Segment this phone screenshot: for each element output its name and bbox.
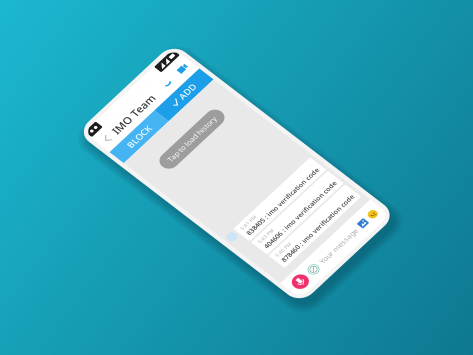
staticText: 838405 : imo verification code — [168, 258, 323, 272]
staticText: 878460 : imo verification code — [168, 331, 323, 345]
staticText: 404606 : imo verification code — [168, 294, 323, 309]
staticText: Tap to load history — [185, 75, 287, 91]
